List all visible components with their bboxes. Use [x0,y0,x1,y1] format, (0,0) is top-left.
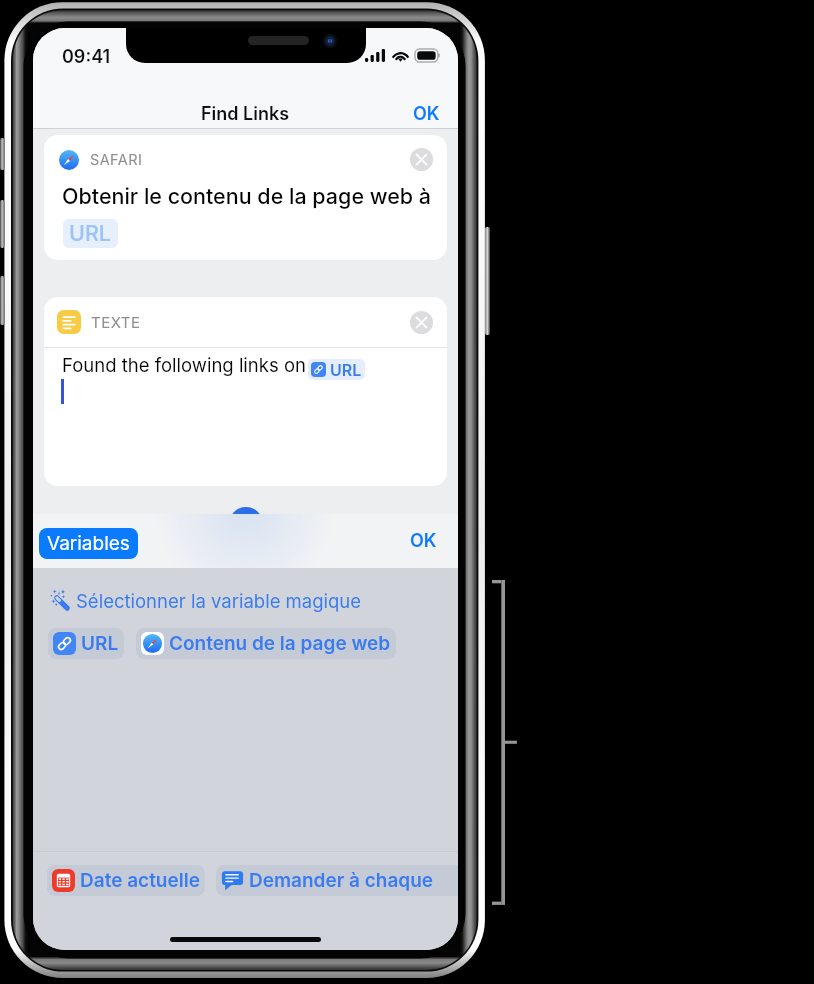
staticText: Contenu de la page web [169,632,391,655]
button[interactable]: Date actuelle [47,865,205,896]
staticText: Find Links [201,103,290,125]
staticText: URL [330,360,362,379]
button[interactable]: Remove action [410,311,433,334]
button[interactable]: URL [63,219,118,248]
button[interactable]: OK [389,524,458,558]
staticText: Date actuelle [80,869,200,892]
staticText: Obtenir le contenu de la page web à [62,183,432,209]
button[interactable]: Demander à chaque fois [216,865,458,896]
button[interactable]: SAFARI [44,135,447,260]
staticText: 09:41 [62,46,111,68]
staticText: TEXTE [91,313,141,331]
staticText: OK [410,530,437,552]
button[interactable]: TEXTE [44,297,447,347]
staticText: OK [413,103,440,124]
staticText: URL [81,632,119,655]
button[interactable]: Remove action [410,148,433,171]
button[interactable]: OK [395,101,458,128]
button[interactable]: Sélectionner la variable magique [48,588,362,613]
staticText: URL [69,220,112,246]
button[interactable]: Contenu de la page web [136,628,396,659]
staticText: SAFARI [90,151,143,169]
staticText: Variables [47,532,130,555]
staticText: Demander à chaque fois [249,869,458,892]
staticText: Found the following links on [62,354,306,376]
button[interactable]: Variables [39,528,138,559]
button[interactable]: URL [48,628,124,659]
staticText: Sélectionner la variable magique [76,590,362,612]
button[interactable]: URL [308,359,365,380]
